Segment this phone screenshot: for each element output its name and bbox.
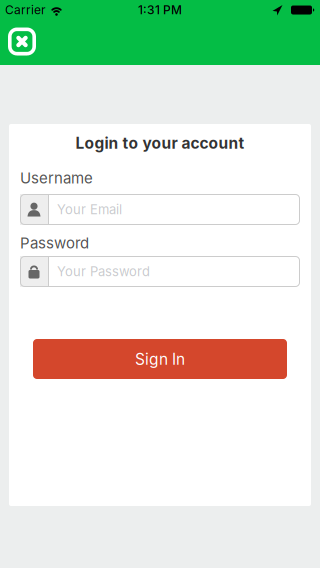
staticText: Sign In [135, 350, 185, 368]
staticText: Login to your account [75, 134, 244, 152]
staticText: Your Email [57, 202, 122, 217]
button[interactable] [8, 27, 36, 55]
staticText: 1:31 PM [138, 3, 182, 17]
staticText: Password [20, 234, 89, 252]
staticText: Username [20, 169, 93, 187]
button[interactable]: Your Email [20, 194, 300, 225]
staticText: Carrier [5, 3, 46, 17]
button[interactable]: Sign In [33, 339, 287, 379]
button[interactable]: Your Password [20, 256, 300, 287]
staticText: Your Password [57, 264, 150, 279]
